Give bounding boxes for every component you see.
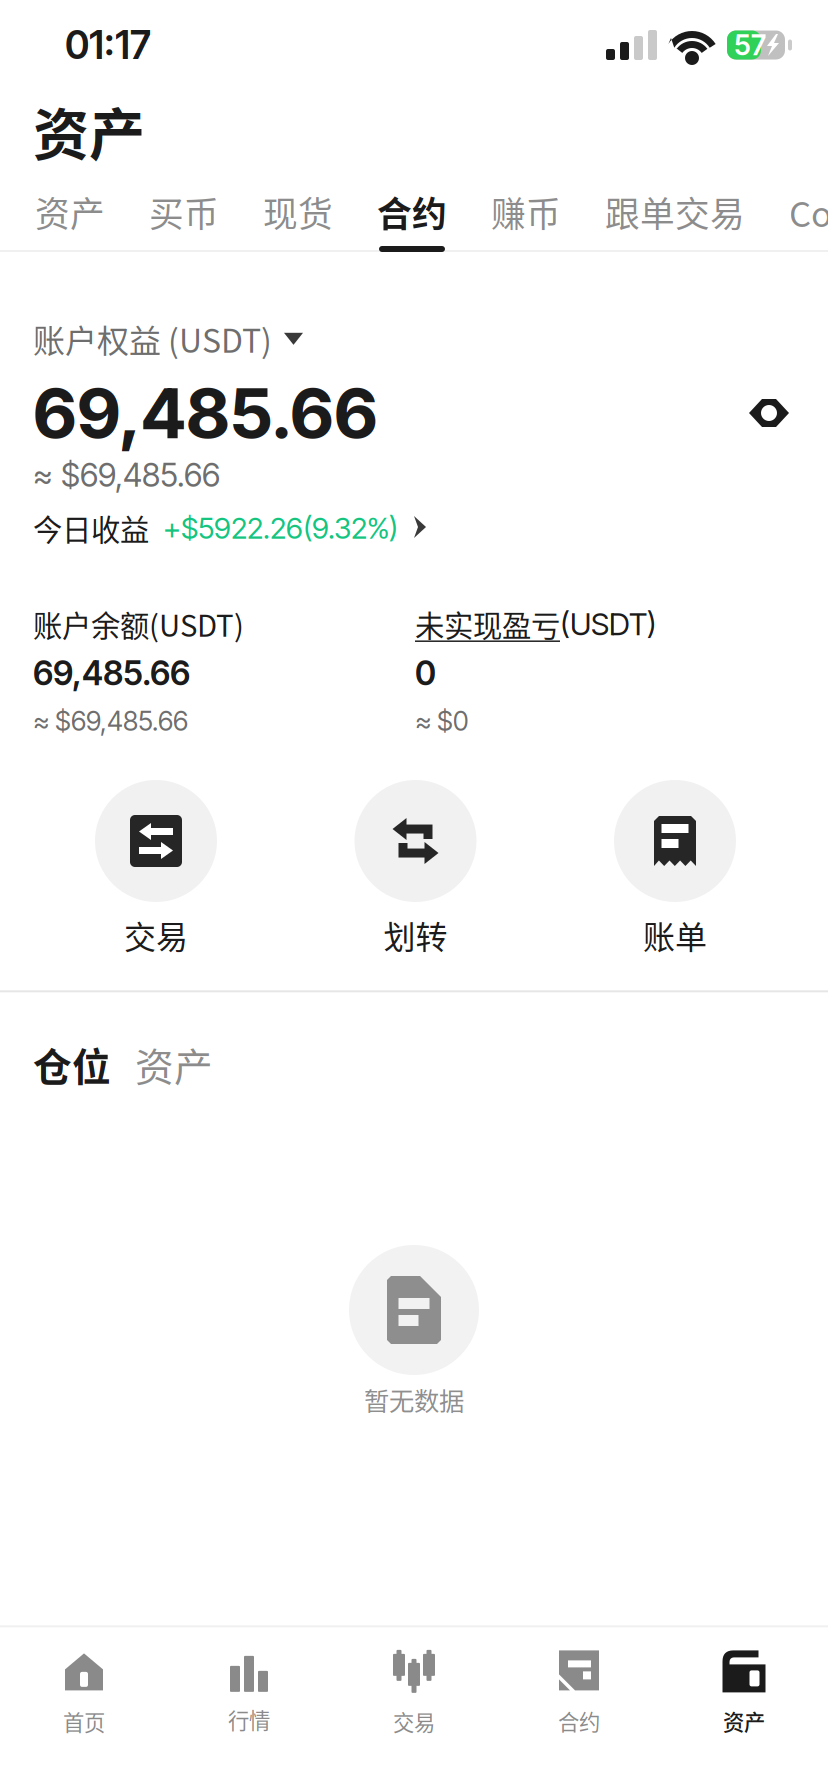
staticText: Coin <box>789 187 828 237</box>
button[interactable]: 合约 <box>496 1643 661 1743</box>
staticText: 资产 <box>33 90 145 171</box>
staticText: 行情 <box>228 1704 270 1735</box>
staticText: 资产 <box>35 187 105 237</box>
staticText: 首页 <box>63 1706 105 1737</box>
staticText: 跟单交易 <box>605 187 745 237</box>
button[interactable]: 仓位 <box>33 1036 111 1092</box>
staticText: 划转 <box>383 912 447 958</box>
button[interactable]: 资产 <box>661 1643 826 1743</box>
staticText: 未实现盈亏 <box>415 603 560 645</box>
button[interactable]: 交易 <box>61 780 251 958</box>
button[interactable]: 交易 <box>331 1643 496 1743</box>
staticText: 现货 <box>263 187 333 237</box>
staticText: 账户权益 (USDT) <box>33 316 272 362</box>
staticText: 合约 <box>558 1705 600 1736</box>
button[interactable]: Coin <box>789 190 828 252</box>
staticText: 69,485.66 <box>33 371 378 455</box>
staticText: 69,485.66 <box>33 653 190 693</box>
staticText: 交易 <box>124 912 188 958</box>
staticText: (USDT) <box>560 605 657 642</box>
button[interactable]: 跟单交易 <box>605 190 745 252</box>
button[interactable]: 行情 <box>166 1643 331 1743</box>
staticText: ≈ $0 <box>415 705 468 737</box>
staticText: 暂无数据 <box>364 1381 464 1418</box>
staticText: 交易 <box>393 1706 435 1737</box>
staticText: 0 <box>415 653 436 693</box>
button[interactable]: 首页 <box>1 1643 166 1743</box>
staticText: 账单 <box>643 912 707 958</box>
button[interactable]: 账单 <box>580 780 770 958</box>
button[interactable]: 资产 <box>35 190 105 252</box>
button[interactable]: 划转 <box>320 780 510 958</box>
staticText: ≈ $69,485.66 <box>33 456 220 494</box>
button[interactable]: 合约 <box>377 190 447 252</box>
button[interactable]: 隐藏余额 <box>743 389 795 437</box>
button[interactable]: 赚币 <box>491 190 561 252</box>
staticText: 合约 <box>377 187 447 237</box>
staticText: ≈ $69,485.66 <box>33 705 188 737</box>
staticText: 买币 <box>149 187 219 237</box>
staticText: 赚币 <box>491 187 561 237</box>
staticText: 今日收益 <box>33 507 149 549</box>
staticText: +$5922.26(9.32%) <box>163 510 398 546</box>
staticText: 账户余额(USDT) <box>33 603 244 645</box>
staticText: 资产 <box>723 1705 765 1736</box>
button[interactable]: 买币 <box>149 190 219 252</box>
button[interactable]: 今日收益 <box>33 507 795 549</box>
staticText: 仓位 <box>33 1036 111 1092</box>
button[interactable]: 现货 <box>263 190 333 252</box>
staticText: 01:17 <box>65 22 151 68</box>
staticText: 57 <box>734 28 766 62</box>
button[interactable]: 资产 <box>111 1036 213 1092</box>
staticText: 资产 <box>135 1036 213 1092</box>
